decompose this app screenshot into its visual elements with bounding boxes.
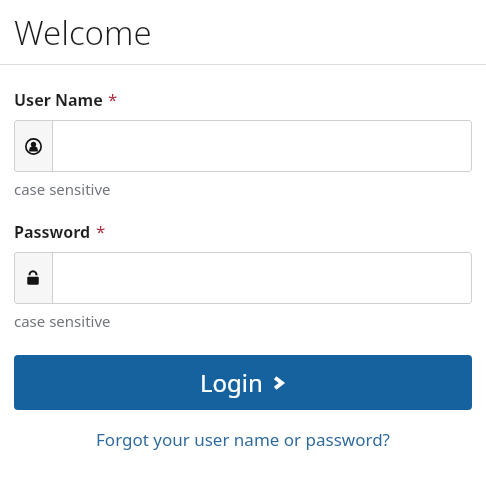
button[interactable]: Forgot your user name or password?	[0, 428, 486, 451]
button[interactable]: User name input field	[14, 120, 472, 172]
staticText: case sensitive	[14, 311, 111, 331]
staticText: *	[96, 220, 106, 243]
staticText: Welcome	[14, 10, 152, 55]
staticText: User Name	[14, 89, 103, 111]
staticText: Login	[200, 366, 263, 399]
button[interactable]: Password input field	[14, 252, 472, 304]
staticText: Forgot your user name or password?	[96, 428, 390, 451]
staticText: Password	[14, 221, 91, 243]
staticText: *	[108, 88, 118, 111]
button[interactable]: Login	[14, 355, 472, 410]
staticText: case sensitive	[14, 179, 111, 199]
